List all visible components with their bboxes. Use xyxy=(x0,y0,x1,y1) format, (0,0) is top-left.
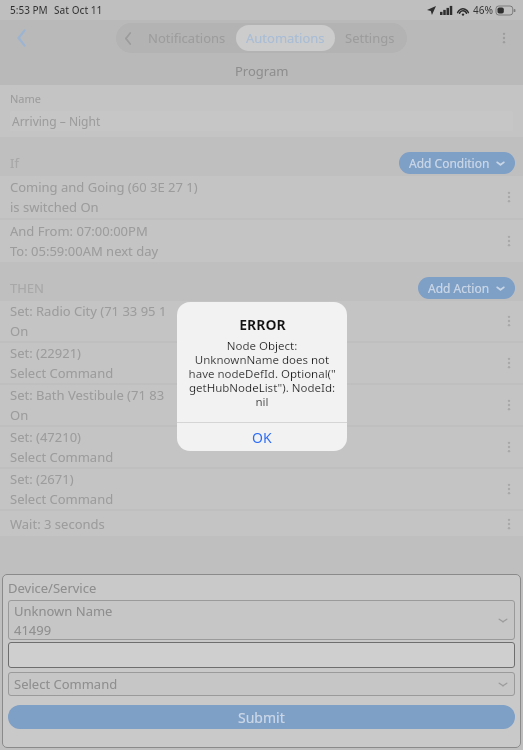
button[interactable]: Notifications xyxy=(138,25,236,51)
button[interactable]: Row options xyxy=(499,311,519,331)
button[interactable]: Back xyxy=(6,23,36,53)
staticText: Program xyxy=(235,62,289,80)
staticText: is switched On xyxy=(10,198,99,216)
staticText: Coming and Going (60 3E 27 1) xyxy=(10,178,198,196)
button[interactable]: Set: Bath Vestibule (71 83 xyxy=(0,385,523,425)
staticText: And From: 07:00:00PM xyxy=(10,222,148,240)
button[interactable]: Row options xyxy=(499,187,519,207)
button[interactable]: Submit xyxy=(8,705,515,729)
staticText: Set: (22921) xyxy=(10,344,82,362)
button[interactable]: Set: Radio City (71 33 95 1 xyxy=(0,301,523,341)
staticText: Add Condition xyxy=(409,155,490,171)
staticText: Set: Radio City (71 33 95 1 xyxy=(10,302,167,320)
staticText: Set: (2671) xyxy=(10,470,74,488)
staticText: ERROR xyxy=(239,315,286,334)
button[interactable]: Row options xyxy=(499,231,519,251)
staticText: Sat Oct 11 xyxy=(54,3,103,17)
button[interactable]: More options xyxy=(491,25,517,51)
staticText: Add Action xyxy=(428,280,490,296)
button[interactable]: Add Condition xyxy=(399,152,515,174)
staticText: THEN xyxy=(10,279,44,297)
button[interactable]: Coming and Going (60 3E 27 1) xyxy=(0,176,523,218)
button[interactable]: Set: (2671) xyxy=(0,469,523,509)
staticText: Notifications xyxy=(148,29,226,47)
button[interactable]: Row options xyxy=(499,353,519,373)
button[interactable]: Row options xyxy=(499,395,519,415)
button[interactable]: Unknown Name xyxy=(8,600,515,640)
button[interactable]: Settings xyxy=(335,25,405,51)
staticText: 5:53 PM xyxy=(10,3,48,17)
staticText: 46% xyxy=(473,3,493,17)
staticText: Select Command xyxy=(10,490,114,508)
button[interactable]: Set: (47210) xyxy=(0,427,523,467)
button[interactable]: Back xyxy=(118,26,138,50)
button[interactable]: Row options xyxy=(499,514,519,534)
staticText: To: 05:59:00AM next day xyxy=(10,242,159,260)
staticText: Submit xyxy=(238,708,285,727)
button[interactable]: Wait: 3 seconds xyxy=(0,511,523,536)
staticText: If xyxy=(10,154,19,172)
staticText: Select Command xyxy=(10,448,114,466)
button[interactable]: Automations xyxy=(236,25,335,51)
button[interactable] xyxy=(8,642,515,668)
staticText: Set: (47210) xyxy=(10,428,82,446)
staticText: Automations xyxy=(246,29,325,47)
staticText: Unknown Name xyxy=(14,602,113,620)
button[interactable]: OK xyxy=(177,423,347,451)
button[interactable]: Row options xyxy=(499,479,519,499)
button[interactable]: And From: 07:00:00PM xyxy=(0,220,523,262)
staticText: OK xyxy=(252,428,272,447)
staticText: Node Object: UnknownName does not have n… xyxy=(187,338,337,409)
button[interactable]: Set: (22921) xyxy=(0,343,523,383)
staticText: Set: Bath Vestibule (71 83 xyxy=(10,386,165,404)
button[interactable]: Arriving – Night xyxy=(10,111,513,131)
staticText: Settings xyxy=(345,29,395,47)
staticText: Arriving – Night xyxy=(12,113,101,129)
staticText: Device/Service xyxy=(8,579,97,597)
button[interactable]: Row options xyxy=(499,437,519,457)
staticText: Name xyxy=(10,91,42,106)
button[interactable]: Select Command xyxy=(8,672,515,696)
staticText: On xyxy=(10,322,29,340)
staticText: Wait: 3 seconds xyxy=(10,515,105,533)
staticText: 41499 xyxy=(14,621,52,639)
button[interactable]: Add Action xyxy=(418,277,515,299)
staticText: Select Command xyxy=(14,675,118,693)
staticText: Select Command xyxy=(10,364,114,382)
staticText: On xyxy=(10,406,29,424)
